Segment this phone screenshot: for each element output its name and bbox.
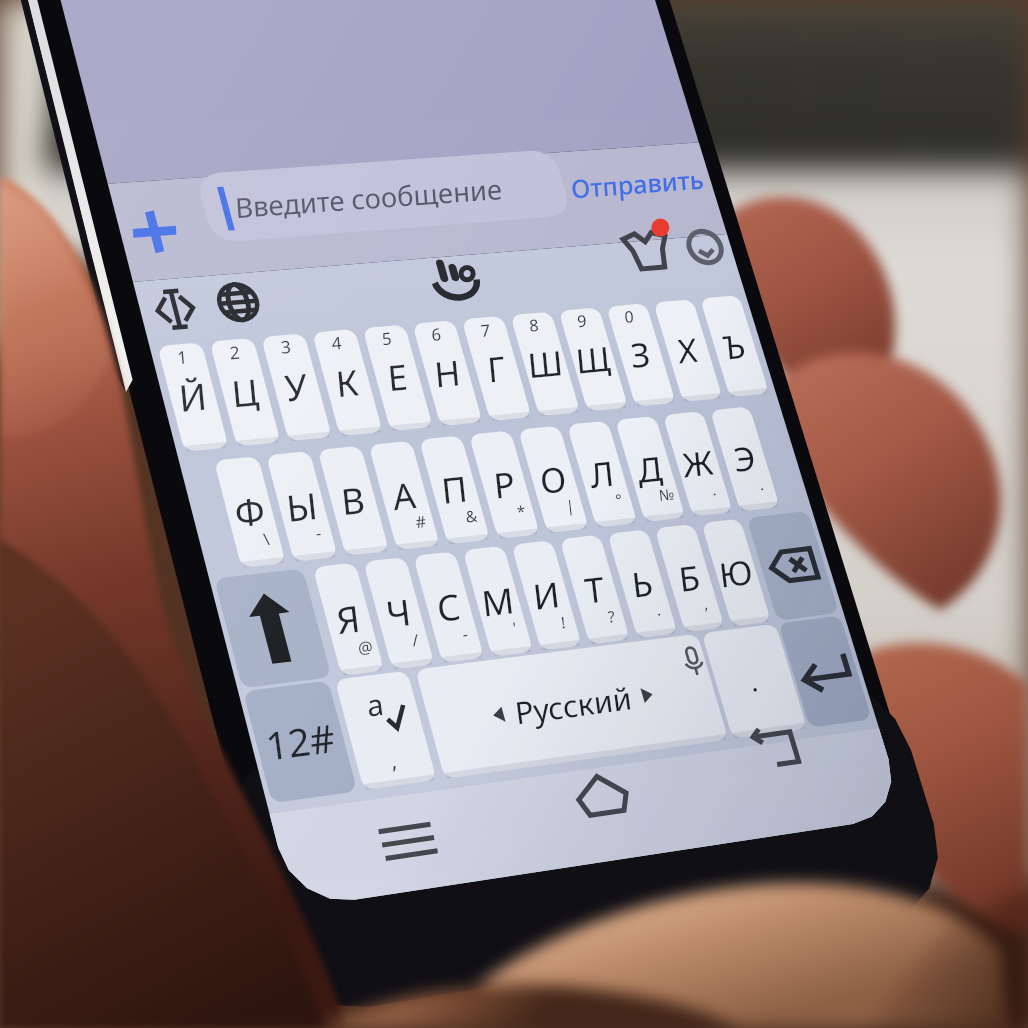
- button[interactable]: Phone keyboard photo: [0, 0, 1028, 1028]
